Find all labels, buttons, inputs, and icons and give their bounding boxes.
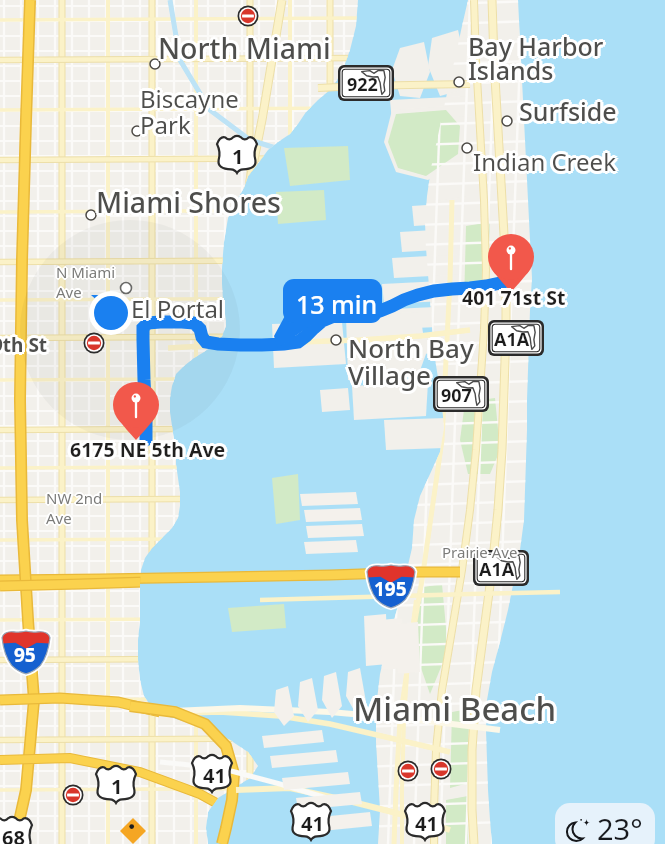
staticText: North Miami xyxy=(161,29,334,68)
staticText: Indian Creek xyxy=(471,143,614,176)
staticText: Indian Creek xyxy=(475,143,618,176)
staticText: North Bay xyxy=(348,333,474,368)
staticText: Prairie Ave xyxy=(444,542,520,562)
staticText: N Miami Ave xyxy=(55,261,115,301)
staticText: Park xyxy=(142,110,193,143)
staticText: Biscayne xyxy=(138,80,237,113)
staticText: Park xyxy=(143,108,194,141)
staticText: Islands xyxy=(470,55,556,89)
staticText: NW 2nd Ave xyxy=(47,489,104,529)
staticText: NW 2nd Ave xyxy=(46,490,103,530)
staticText: Indian Creek xyxy=(476,145,619,178)
staticText: Surfside xyxy=(519,97,617,131)
staticText: N Miami Ave xyxy=(56,262,116,302)
staticText: Bay Harbor xyxy=(471,29,607,63)
staticText: North Miami xyxy=(158,26,331,65)
staticText: Biscayne xyxy=(137,82,236,115)
staticText: Indian Creek xyxy=(473,145,616,178)
staticText: Village xyxy=(346,359,429,394)
staticText: N Miami Ave xyxy=(57,261,117,301)
staticText: Miami Beach xyxy=(353,686,557,731)
staticText: Bay Harbor xyxy=(468,26,604,60)
staticText: Surfside xyxy=(519,94,617,128)
staticText: Surfside xyxy=(521,96,619,130)
staticText: 41 xyxy=(301,810,324,837)
staticText: 6175 NE 5th Ave xyxy=(72,434,228,461)
staticText: Miami Beach xyxy=(350,686,554,731)
staticText: Miami Shores xyxy=(96,186,281,225)
staticText: Park xyxy=(140,105,191,138)
staticText: 1 xyxy=(232,143,244,170)
staticText: Village xyxy=(348,360,431,395)
staticText: Prairie Ave xyxy=(443,543,519,563)
staticText: 9th St xyxy=(0,330,50,356)
staticText: North Miami xyxy=(155,29,328,68)
staticText: North Miami xyxy=(156,31,329,70)
staticText: El Portal xyxy=(128,292,222,325)
staticText: Prairie Ave xyxy=(441,543,517,563)
staticText: North Bay xyxy=(350,328,476,363)
staticText: North Bay xyxy=(346,332,472,367)
staticText: North Miami xyxy=(160,31,333,70)
staticText: 23° xyxy=(597,809,643,844)
staticText: N Miami Ave xyxy=(54,262,114,302)
staticText: 195 xyxy=(374,576,407,602)
staticText: Prairie Ave xyxy=(440,542,516,562)
staticText: N Miami Ave xyxy=(56,264,116,304)
staticText: A1A xyxy=(494,327,530,352)
staticText: Miami Shores xyxy=(98,181,283,220)
staticText: 6175 NE 5th Ave xyxy=(68,438,224,465)
staticText: NW 2nd Ave xyxy=(48,488,105,528)
staticText: 9th St xyxy=(0,335,48,361)
staticText: NW 2nd Ave xyxy=(46,488,103,528)
staticText: Miami Beach xyxy=(351,684,555,729)
staticText: 6175 NE 5th Ave xyxy=(72,438,228,465)
staticText: Bay Harbor xyxy=(466,31,602,65)
staticText: Islands xyxy=(466,55,552,89)
staticText: NW 2nd Ave xyxy=(45,487,102,527)
staticText: Surfside xyxy=(522,94,620,128)
staticText: Park xyxy=(137,108,188,141)
staticText: A1A xyxy=(479,557,515,582)
staticText: Village xyxy=(350,355,433,390)
staticText: 401 71st St xyxy=(459,284,563,311)
staticText: N Miami Ave xyxy=(58,262,118,302)
staticText: North Bay xyxy=(350,332,476,367)
staticText: North Bay xyxy=(351,330,477,365)
staticText: Miami Beach xyxy=(356,686,560,731)
staticText: North Miami xyxy=(158,32,331,71)
staticText: Miami Beach xyxy=(351,688,555,733)
staticText: Biscayne xyxy=(140,85,239,118)
staticText: 6175 NE 5th Ave xyxy=(67,436,223,463)
staticText: 6175 NE 5th Ave xyxy=(73,436,229,463)
staticText: North Bay xyxy=(345,330,471,365)
staticText: El Portal xyxy=(133,294,227,327)
staticText: El Portal xyxy=(131,292,225,325)
staticText: Bay Harbor xyxy=(470,27,606,61)
staticText: 9th St xyxy=(0,334,50,360)
staticText: Village xyxy=(350,359,433,394)
staticText: 68 xyxy=(2,824,25,844)
staticText: NW 2nd Ave xyxy=(46,486,103,526)
staticText: Indian Creek xyxy=(470,145,613,178)
staticText: North Miami xyxy=(156,27,329,66)
staticText: N Miami Ave xyxy=(57,263,117,303)
staticText: Prairie Ave xyxy=(442,542,518,562)
staticText: Park xyxy=(140,111,191,144)
staticText: Bay Harbor xyxy=(468,29,604,63)
staticText: NW 2nd Ave xyxy=(47,487,104,527)
staticText: Islands xyxy=(466,51,552,85)
staticText: Islands xyxy=(468,56,554,90)
staticText: Prairie Ave xyxy=(442,544,518,564)
staticText: 6175 NE 5th Ave xyxy=(70,439,226,466)
staticText: 13 min xyxy=(296,287,378,321)
staticText: North Miami xyxy=(160,27,333,66)
staticText: 401 71st St xyxy=(464,286,568,313)
staticText: Miami Shores xyxy=(94,185,279,224)
staticText: Indian Creek xyxy=(473,148,616,181)
staticText: 41 xyxy=(415,810,438,837)
button[interactable]: Weather, 23 degrees, clear night xyxy=(555,803,655,844)
staticText: 922 xyxy=(347,72,378,97)
staticText: North Bay xyxy=(348,330,474,365)
staticText: Miami Shores xyxy=(98,185,283,224)
